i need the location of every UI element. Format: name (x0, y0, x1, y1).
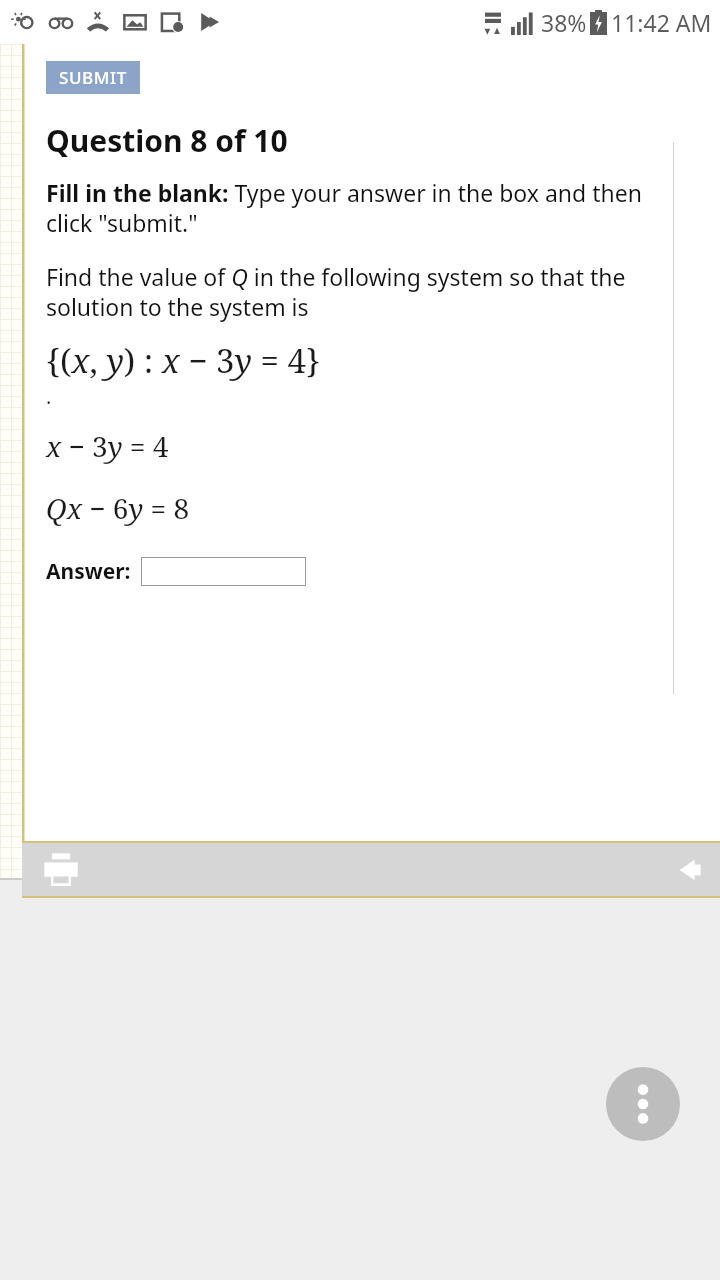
button[interactable]: SUBMIT (46, 61, 140, 94)
staticText: SUBMIT (59, 66, 127, 89)
staticText: Answer: (46, 557, 131, 586)
staticText: Question 8 of 10 (46, 120, 288, 161)
button[interactable]: Answer input (141, 557, 306, 586)
staticText: Fill in the blank: Type your answer in t… (46, 177, 676, 238)
button[interactable]: Previous (668, 847, 714, 893)
staticText: x − 3y = 4 (46, 427, 169, 465)
staticText: 11:42 AM (611, 7, 712, 38)
staticText: Find the value of Q in the following sys… (46, 261, 676, 322)
staticText: . (46, 383, 52, 410)
button[interactable]: Print (38, 847, 84, 893)
button[interactable]: More options (606, 1067, 680, 1141)
staticText: 38% (541, 7, 587, 38)
staticText: {(x, y) : x − 3y = 4} (46, 338, 321, 383)
staticText: Qx − 6y = 8 (46, 489, 190, 527)
